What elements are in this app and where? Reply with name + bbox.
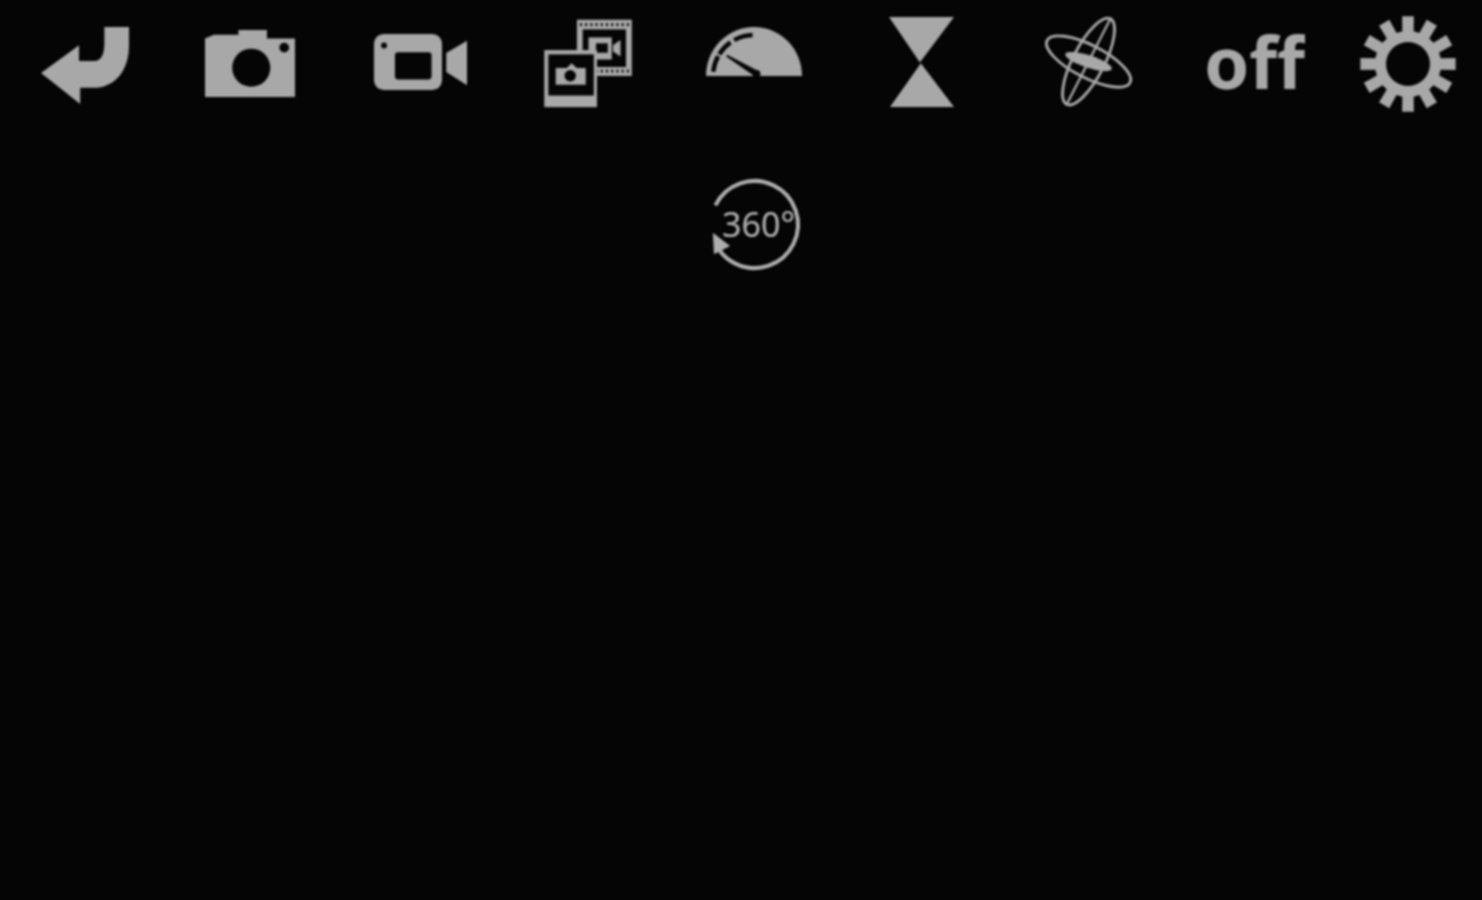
button[interactable]: Take photo [205, 30, 295, 97]
button[interactable]: Settings [1360, 16, 1456, 112]
button[interactable]: Back [41, 25, 129, 104]
staticText: off [1204, 12, 1305, 106]
button[interactable]: 360 degree rotation [709, 179, 800, 270]
button[interactable]: off [1194, 12, 1314, 106]
button[interactable]: Gallery [544, 19, 632, 108]
button[interactable]: Capture speed [706, 27, 802, 76]
staticText: 360° [722, 201, 795, 247]
button[interactable]: Self timer [889, 17, 954, 107]
button[interactable]: Record video [374, 34, 467, 90]
button[interactable]: Gyroscope stabiliser [1042, 15, 1138, 114]
